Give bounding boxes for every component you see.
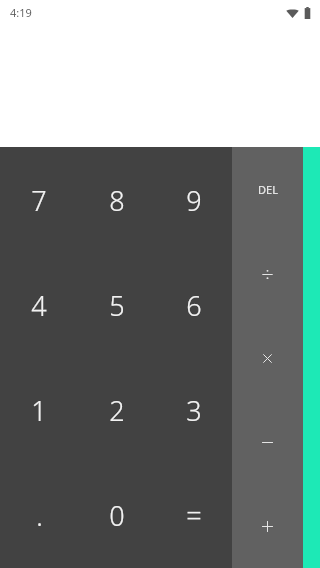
- button[interactable]: 0: [78, 463, 155, 568]
- button[interactable]: 7: [0, 147, 78, 253]
- button[interactable]: Multiply: [232, 316, 303, 400]
- staticText: 0: [109, 497, 125, 534]
- staticText: 4: [31, 287, 47, 324]
- staticText: 3: [186, 392, 202, 429]
- staticText: 1: [31, 392, 47, 429]
- button[interactable]: Divide: [232, 232, 303, 316]
- button[interactable]: 3: [155, 358, 232, 463]
- button[interactable]: DEL: [232, 147, 303, 232]
- staticText: 8: [109, 182, 125, 219]
- staticText: 2: [109, 392, 125, 429]
- staticText: DEL: [258, 182, 278, 197]
- button[interactable]: .: [0, 463, 78, 568]
- button[interactable]: 8: [78, 147, 155, 253]
- button[interactable]: 5: [78, 253, 155, 358]
- button[interactable]: =: [155, 463, 232, 568]
- button[interactable]: Subtract: [232, 400, 303, 484]
- button[interactable]: 4: [0, 253, 78, 358]
- staticText: =: [186, 497, 202, 534]
- staticText: .: [36, 497, 43, 534]
- button[interactable]: 6: [155, 253, 232, 358]
- button[interactable]: Add: [232, 484, 303, 568]
- staticText: 4:19: [10, 5, 32, 20]
- staticText: 9: [186, 182, 202, 219]
- button[interactable]: 9: [155, 147, 232, 253]
- staticText: 7: [31, 182, 47, 219]
- staticText: 6: [186, 287, 202, 324]
- button[interactable]: 2: [78, 358, 155, 463]
- staticText: 5: [109, 287, 125, 324]
- button[interactable]: 1: [0, 358, 78, 463]
